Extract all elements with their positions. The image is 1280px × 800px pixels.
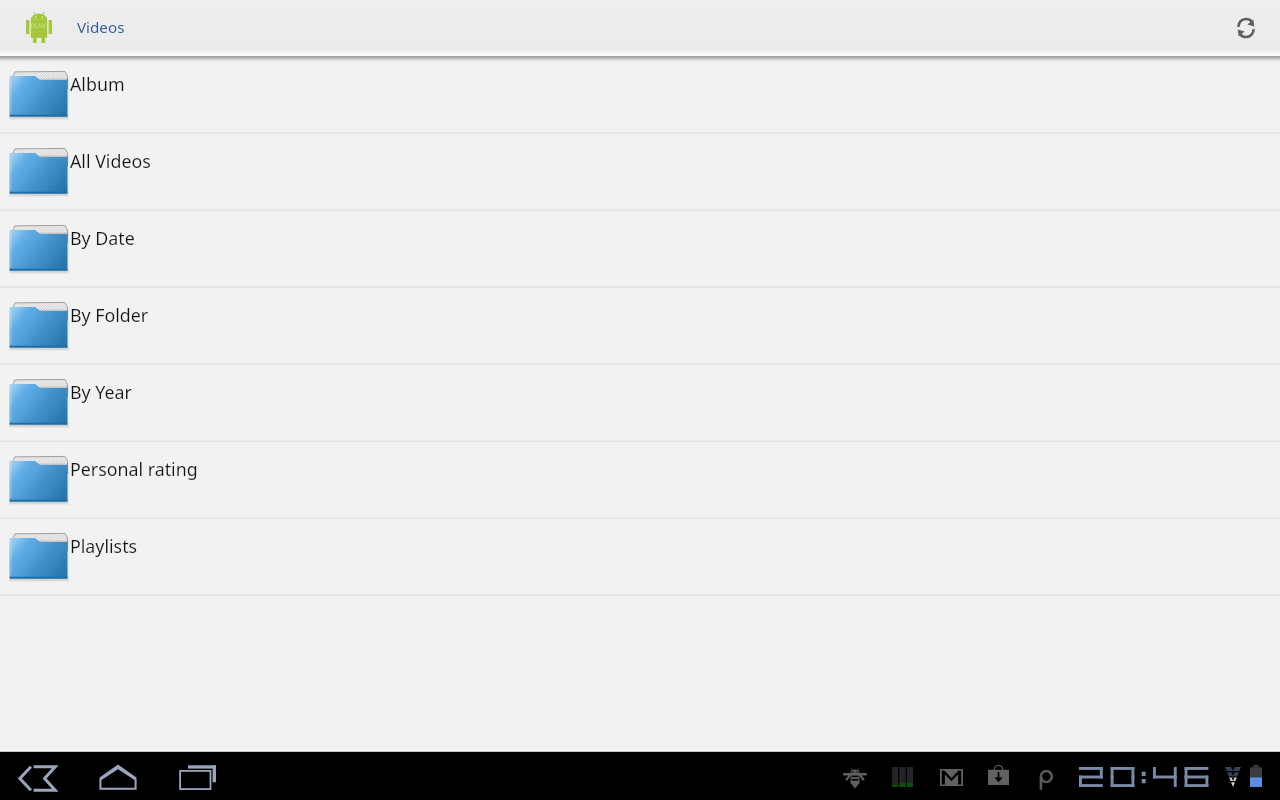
button[interactable]: Home [80,752,156,800]
button[interactable]: Refresh [1216,0,1276,55]
button[interactable]: By Folder [0,288,1280,365]
staticText: Personal rating [70,457,198,481]
button[interactable]: By Year [0,365,1280,442]
button[interactable]: Videos [0,6,137,49]
staticText: All Videos [70,149,151,173]
button[interactable]: Recent apps [160,752,236,800]
button[interactable]: All Videos [0,134,1280,211]
staticText: Videos [77,17,125,38]
button[interactable]: Playlists [0,519,1280,596]
button[interactable]: By Date [0,211,1280,288]
staticText: By Year [70,380,132,404]
button[interactable]: Back [0,752,76,800]
button[interactable]: Personal rating [0,442,1280,519]
staticText: By Folder [70,303,149,327]
button[interactable]: Album [0,57,1280,134]
staticText: Album [70,72,125,96]
staticText: Playlists [70,534,138,558]
staticText: By Date [70,226,135,250]
